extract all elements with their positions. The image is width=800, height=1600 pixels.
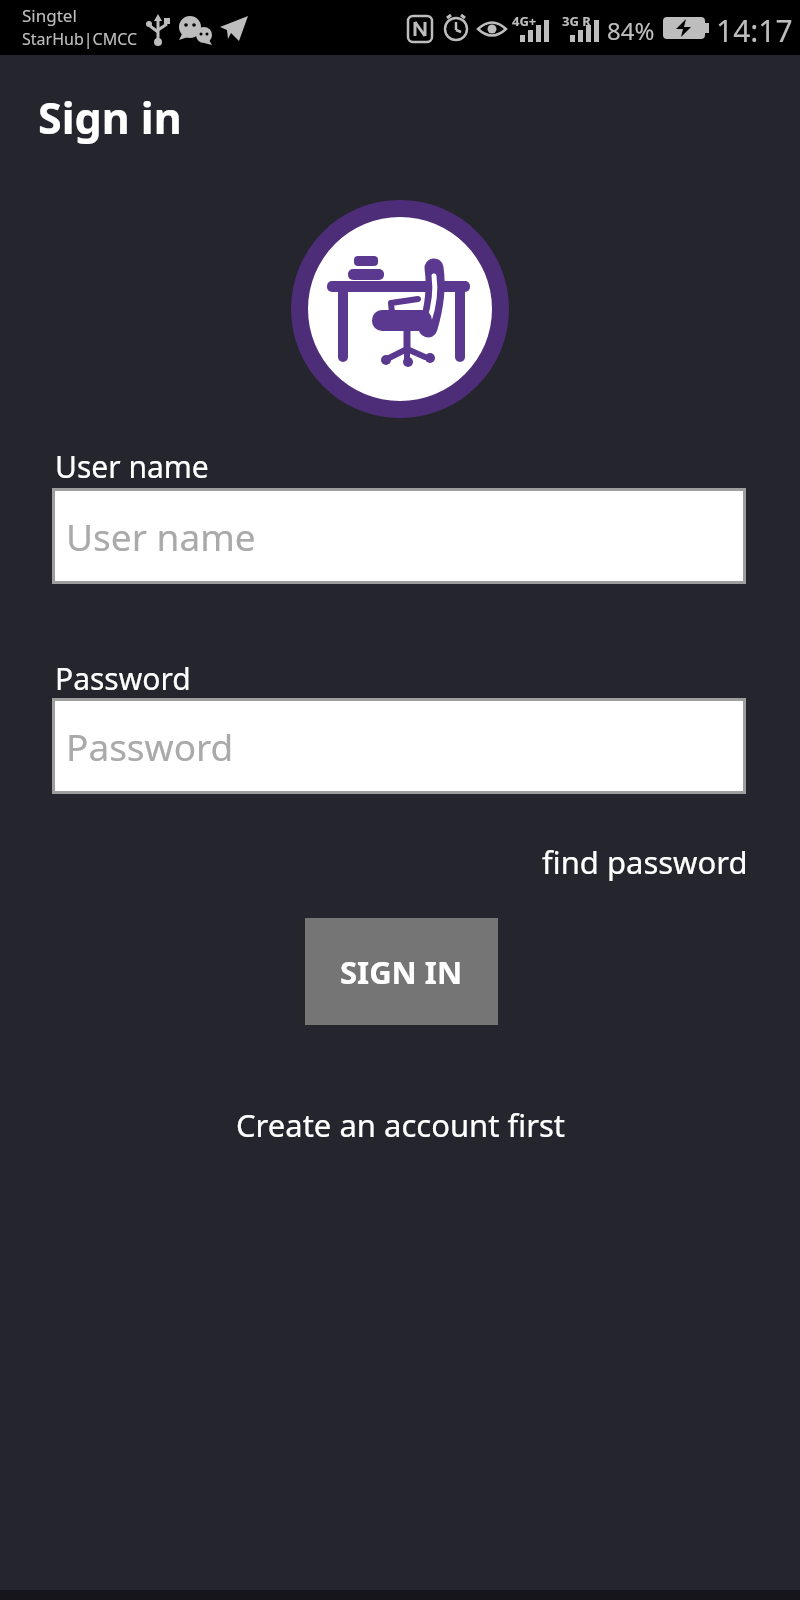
staticText: Singtel: [22, 4, 77, 27]
staticText: 14:17: [716, 10, 793, 51]
staticText: Password: [66, 721, 234, 771]
staticText: User name: [66, 511, 256, 561]
staticText: SIGN IN: [340, 951, 463, 993]
button[interactable]: User name: [52, 488, 746, 584]
button[interactable]: SIGN IN: [305, 918, 498, 1025]
staticText: 4G+: [512, 12, 537, 30]
staticText: Sign in: [38, 88, 182, 147]
button[interactable]: Create an account first: [236, 1104, 565, 1146]
button[interactable]: Password: [52, 698, 746, 794]
staticText: 84%: [607, 14, 655, 47]
staticText: 3G R: [562, 12, 591, 30]
button[interactable]: find password: [542, 841, 748, 883]
staticText: StarHub|CMCC: [22, 28, 138, 50]
staticText: Password: [55, 658, 191, 699]
staticText: User name: [55, 446, 209, 487]
